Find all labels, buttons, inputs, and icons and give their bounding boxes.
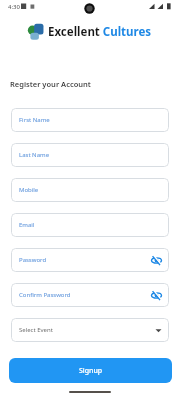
- button[interactable]: Confirm Password: [11, 283, 169, 307]
- button[interactable]: First Name: [11, 108, 169, 132]
- staticText: Mobile: [19, 186, 39, 194]
- staticText: Confirm Password: [19, 291, 71, 299]
- staticText: Email: [19, 221, 35, 229]
- button[interactable]: Last Name: [11, 143, 169, 167]
- button[interactable]: Select Event: [11, 318, 169, 342]
- staticText: Excellent Cultures: [48, 24, 152, 40]
- staticText: Select Event: [19, 326, 53, 334]
- staticText: Password: [19, 256, 47, 264]
- button[interactable]: Email: [11, 213, 169, 237]
- staticText: Signup: [79, 366, 103, 376]
- staticText: First Name: [19, 116, 50, 124]
- button[interactable]: Password: [11, 248, 169, 272]
- staticText: Last Name: [19, 151, 50, 159]
- button[interactable]: Signup: [9, 358, 172, 383]
- staticText: Register your Account: [10, 79, 91, 89]
- button[interactable]: Mobile: [11, 178, 169, 202]
- staticText: 4:30: [8, 3, 20, 11]
